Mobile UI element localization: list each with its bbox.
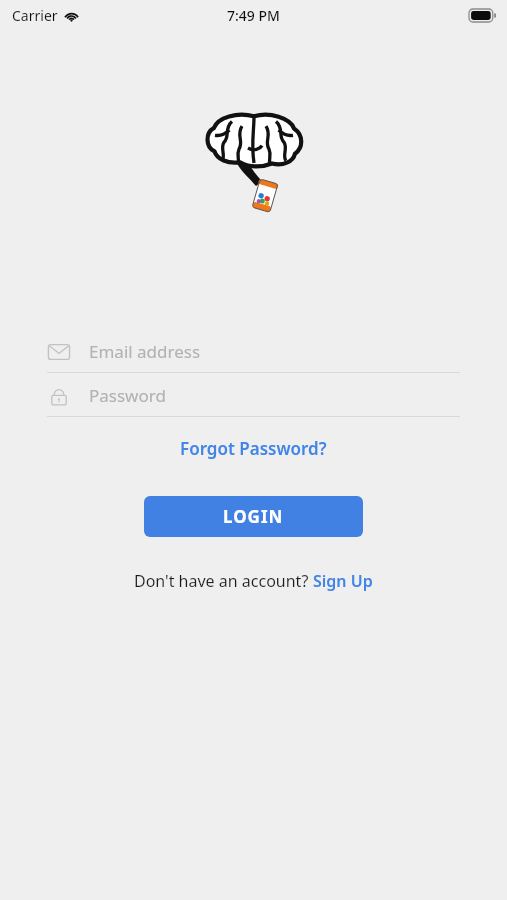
button[interactable]: Password	[0, 375, 507, 417]
staticText: Don't have an account?	[134, 570, 313, 592]
staticText: 7:49 PM	[227, 6, 280, 25]
staticText: Carrier	[12, 6, 58, 25]
staticText: Email address	[89, 340, 201, 363]
staticText: LOGIN	[223, 505, 284, 528]
button[interactable]: LOGIN	[144, 496, 363, 537]
button[interactable]: Email address	[0, 331, 507, 373]
staticText: Forgot Password?	[180, 437, 327, 460]
staticText: Password	[89, 384, 166, 407]
button[interactable]: Forgot Password?	[172, 433, 335, 464]
button[interactable]: Sign Up	[313, 570, 373, 592]
staticText: Sign Up	[313, 570, 373, 592]
